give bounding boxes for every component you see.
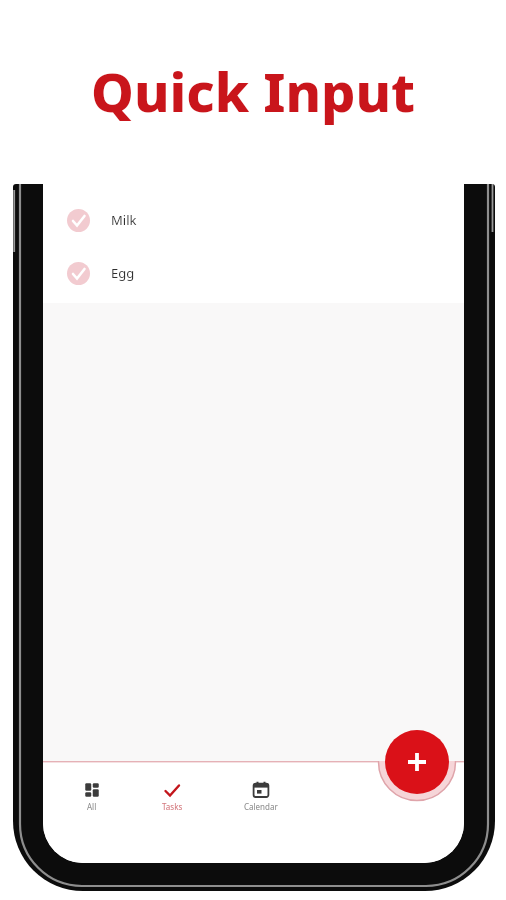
staticText: All <box>87 801 97 812</box>
button[interactable]: Calendar <box>231 781 291 821</box>
button[interactable]: All <box>62 781 122 821</box>
staticText: Egg <box>111 264 135 282</box>
button[interactable] <box>385 730 449 794</box>
button[interactable]: Tasks <box>142 781 202 821</box>
button[interactable]: Milk <box>67 208 137 232</box>
staticText: Calendar <box>244 801 278 812</box>
staticText: Milk <box>111 211 137 229</box>
staticText: Quick Input <box>91 54 416 128</box>
button[interactable]: Egg <box>67 261 135 285</box>
staticText: Tasks <box>162 801 183 812</box>
